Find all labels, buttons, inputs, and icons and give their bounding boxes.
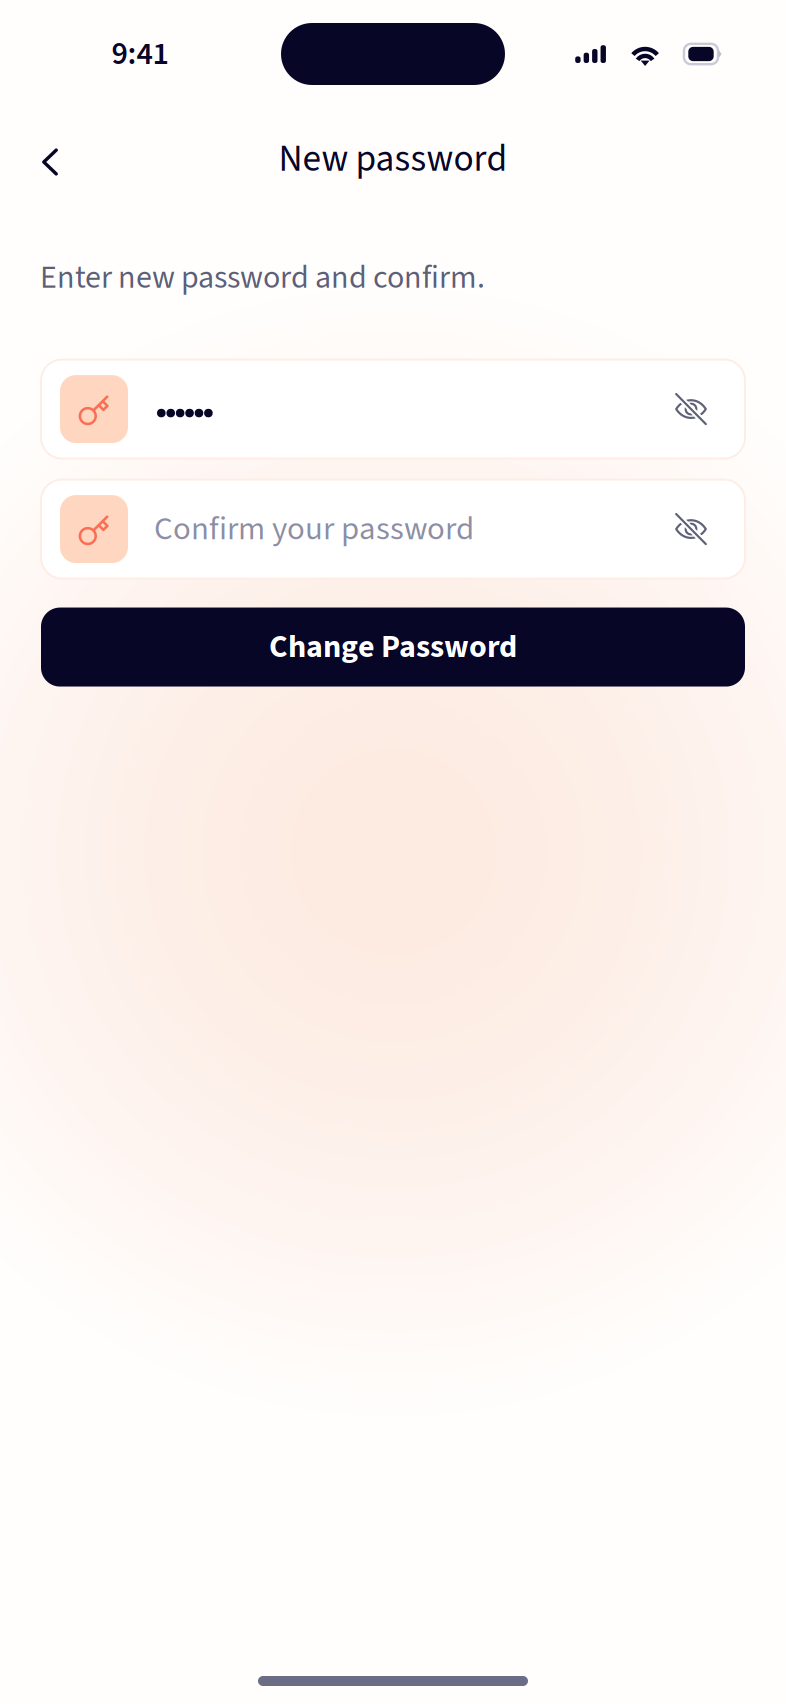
button[interactable]: Change Password — [41, 608, 745, 687]
staticText: New password — [278, 132, 507, 186]
button[interactable]: New password — [41, 360, 745, 459]
staticText: Confirm your password — [154, 506, 474, 552]
button[interactable]: Show password — [657, 375, 725, 443]
staticText: Enter new password and confirm. — [40, 255, 485, 301]
staticText: Change Password — [269, 624, 517, 670]
button[interactable]: Back — [22, 134, 78, 190]
button[interactable]: Confirm your password — [41, 480, 745, 579]
staticText: 9:41 — [111, 31, 168, 77]
button[interactable]: Show password — [657, 495, 725, 563]
